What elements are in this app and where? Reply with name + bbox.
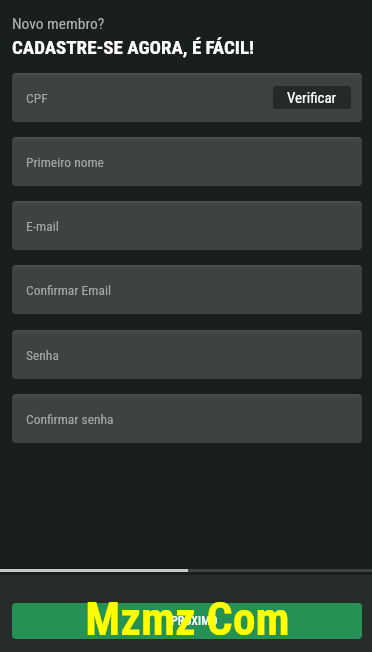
button[interactable]: Confirmar Email [12, 265, 362, 314]
staticText: Mzmz Com [85, 592, 290, 646]
staticText: CADASTRE-SE AGORA, É FÁCIL! [12, 36, 255, 58]
staticText: Novo membro? [12, 15, 105, 33]
button[interactable]: Senha [12, 330, 362, 379]
button[interactable]: E-mail [12, 201, 362, 250]
staticText: CPF [26, 90, 48, 106]
staticText: Confirmar Email [26, 282, 112, 298]
button[interactable]: Primeiro nome [12, 137, 362, 186]
staticText: Primeiro nome [26, 154, 104, 170]
staticText: Confirmar senha [26, 411, 114, 427]
button[interactable]: CPF [12, 73, 362, 122]
button[interactable]: Confirmar senha [12, 394, 362, 443]
staticText: Verificar [287, 89, 337, 107]
staticText: E-mail [26, 218, 59, 234]
button[interactable]: Verificar [273, 86, 351, 109]
staticText: Senha [26, 347, 59, 363]
button[interactable]: PRÓXIMO [12, 603, 362, 639]
staticText: PRÓXIMO [171, 614, 218, 628]
